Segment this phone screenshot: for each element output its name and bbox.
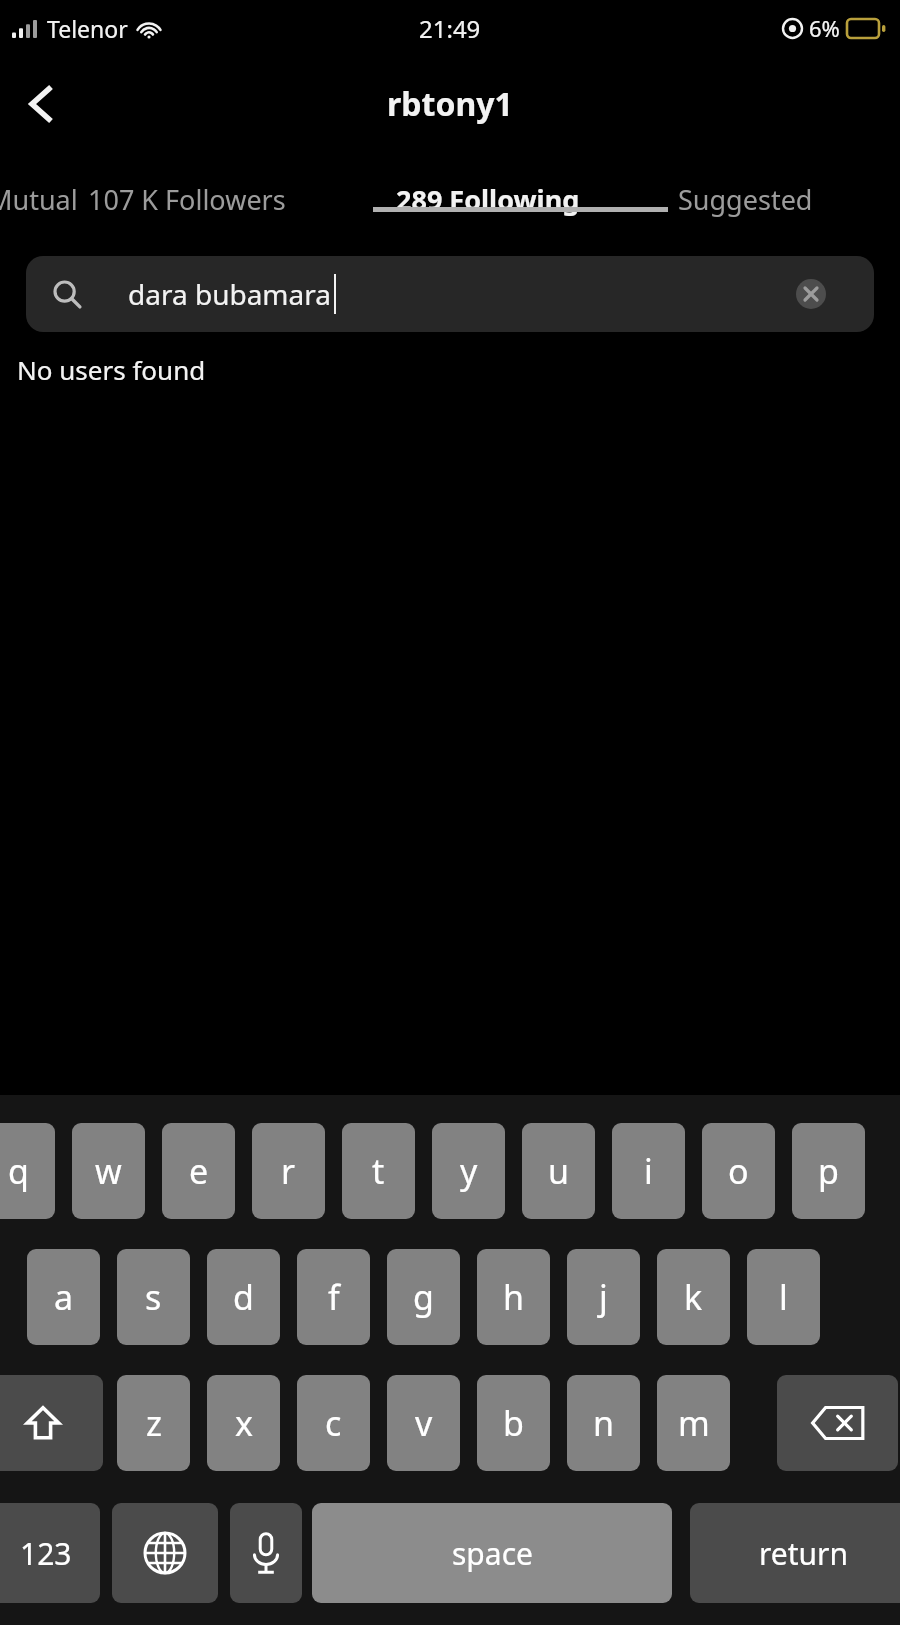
button[interactable]: j: [567, 1249, 640, 1345]
button[interactable]: x: [207, 1375, 280, 1471]
staticText: j: [599, 1274, 608, 1320]
button[interactable]: g: [387, 1249, 460, 1345]
staticText: c: [325, 1400, 342, 1446]
staticText: 289 Following: [396, 181, 580, 218]
button[interactable]: r: [252, 1123, 325, 1219]
button[interactable]: Backspace: [777, 1375, 898, 1471]
button[interactable]: c: [297, 1375, 370, 1471]
button[interactable]: y: [432, 1123, 505, 1219]
staticText: p: [818, 1148, 839, 1194]
button[interactable]: e: [162, 1123, 235, 1219]
staticText: return: [759, 1533, 849, 1574]
staticText: i: [644, 1148, 653, 1194]
staticText: b: [503, 1400, 524, 1446]
staticText: 21:49: [419, 12, 481, 45]
staticText: z: [146, 1400, 162, 1446]
button[interactable]: Dictate: [230, 1503, 302, 1603]
button[interactable]: q: [0, 1123, 55, 1219]
button[interactable]: s: [117, 1249, 190, 1345]
button[interactable]: space: [312, 1503, 672, 1603]
button[interactable]: m: [657, 1375, 730, 1471]
staticText: rbtony1: [387, 82, 513, 126]
staticText: y: [460, 1148, 478, 1194]
button[interactable]: p: [792, 1123, 865, 1219]
button[interactable]: Suggested: [678, 181, 813, 218]
button[interactable]: i: [612, 1123, 685, 1219]
button[interactable]: t: [342, 1123, 415, 1219]
staticText: s: [145, 1274, 162, 1320]
staticText: f: [328, 1274, 340, 1320]
staticText: 107 K Followers: [88, 181, 286, 218]
staticText: x: [235, 1400, 253, 1446]
staticText: v: [415, 1400, 433, 1446]
button[interactable]: k: [657, 1249, 730, 1345]
button[interactable]: b: [477, 1375, 550, 1471]
staticText: r: [281, 1148, 296, 1194]
button[interactable]: a: [27, 1249, 100, 1345]
staticText: m: [678, 1400, 710, 1446]
staticText: e: [189, 1148, 209, 1194]
staticText: u: [548, 1148, 570, 1194]
button[interactable]: Change keyboard: [112, 1503, 218, 1603]
button[interactable]: Back: [6, 69, 76, 139]
staticText: n: [593, 1400, 615, 1446]
button[interactable]: f: [297, 1249, 370, 1345]
staticText: 123: [20, 1533, 72, 1574]
button[interactable]: w: [72, 1123, 145, 1219]
staticText: 6%: [809, 13, 840, 43]
button[interactable]: 107 K Followers: [88, 181, 286, 218]
staticText: l: [779, 1274, 788, 1320]
staticText: space: [452, 1533, 533, 1574]
button[interactable]: 289 Following: [396, 181, 580, 218]
staticText: a: [54, 1274, 74, 1320]
button[interactable]: dara bubamara: [26, 256, 874, 332]
button[interactable]: return: [690, 1503, 900, 1603]
button[interactable]: d: [207, 1249, 280, 1345]
button[interactable]: h: [477, 1249, 550, 1345]
button[interactable]: l: [747, 1249, 820, 1345]
staticText: q: [8, 1148, 29, 1194]
button[interactable]: Mutual: [0, 181, 78, 218]
button[interactable]: o: [702, 1123, 775, 1219]
button[interactable]: v: [387, 1375, 460, 1471]
staticText: Suggested: [678, 181, 813, 218]
button[interactable]: z: [117, 1375, 190, 1471]
button[interactable]: Shift: [0, 1375, 103, 1471]
staticText: o: [728, 1148, 749, 1194]
staticText: Mutual: [0, 181, 78, 218]
staticText: t: [372, 1148, 385, 1194]
staticText: h: [503, 1274, 525, 1320]
staticText: No users found: [17, 352, 206, 387]
staticText: g: [413, 1274, 434, 1320]
staticText: d: [233, 1274, 254, 1320]
button[interactable]: 123: [0, 1503, 100, 1603]
button[interactable]: u: [522, 1123, 595, 1219]
button[interactable]: n: [567, 1375, 640, 1471]
staticText: k: [684, 1274, 703, 1320]
staticText: dara bubamara: [128, 275, 331, 313]
staticText: w: [95, 1148, 122, 1194]
button[interactable]: Clear text: [792, 275, 830, 313]
staticText: Telenor: [47, 13, 128, 44]
